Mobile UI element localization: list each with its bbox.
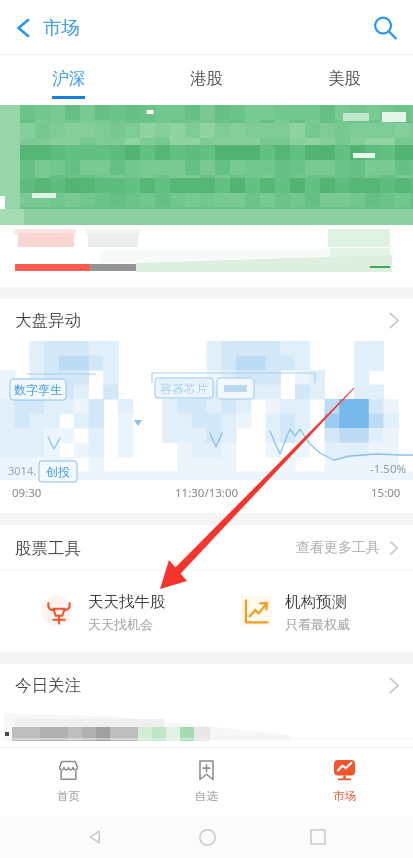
staticText: 09:30 — [12, 485, 42, 501]
staticText: 首页 — [57, 789, 80, 803]
button[interactable] — [0, 105, 413, 225]
staticText: 今日关注 — [15, 675, 81, 696]
button[interactable]: 天天找牛股 — [0, 571, 206, 652]
staticText: 15:00 — [371, 485, 401, 501]
button[interactable]: 数字孪生 — [10, 379, 66, 400]
staticText: 港股 — [190, 68, 223, 89]
button[interactable] — [0, 706, 413, 747]
button[interactable]: 容器芯片 — [155, 378, 213, 398]
button[interactable]: 查看更多工具 — [296, 525, 413, 571]
staticText: 3014. — [8, 463, 37, 478]
button[interactable]: 沪深 — [0, 55, 137, 105]
staticText: 11:30/13:00 — [175, 485, 239, 501]
staticText: 容器芯片 — [160, 381, 208, 396]
staticText: 天天找牛股 — [88, 592, 166, 612]
button[interactable]: Search — [357, 0, 413, 55]
other: More — [389, 677, 399, 694]
staticText: 天天找机会 — [88, 616, 153, 632]
staticText: 自选 — [195, 789, 218, 803]
button[interactable]: 创投 — [39, 461, 77, 482]
button[interactable]: 市场 — [0, 0, 96, 55]
button[interactable]: Back — [78, 820, 112, 854]
button[interactable]: 首页 — [0, 747, 137, 816]
staticText: -1.50% — [370, 461, 407, 477]
button[interactable]: Home — [190, 820, 224, 854]
button[interactable]: 今日关注 — [0, 664, 413, 706]
staticText: 大盘异动 — [15, 310, 81, 331]
staticText: 市场 — [43, 16, 80, 39]
staticText: 市场 — [333, 789, 356, 803]
staticText: 数字孪生 — [14, 382, 62, 397]
staticText: 创投 — [46, 464, 70, 479]
staticText: 只看最权威 — [285, 616, 350, 632]
staticText: 股票工具 — [15, 538, 81, 559]
button[interactable]: 自选 — [137, 747, 275, 816]
button[interactable] — [0, 225, 413, 287]
button[interactable]: 市场 — [275, 747, 413, 816]
button[interactable]: 港股 — [137, 55, 275, 105]
staticText: 机构预测 — [285, 592, 347, 612]
button[interactable]: 美股 — [275, 55, 413, 105]
button[interactable]: 机构预测 — [206, 571, 413, 652]
other: More — [389, 312, 399, 329]
button[interactable]: 大盘异动 — [0, 299, 413, 341]
staticText: 查看更多工具 — [296, 539, 380, 557]
button[interactable]: Recents — [301, 820, 335, 854]
staticText: 美股 — [328, 68, 361, 89]
staticText: 沪深 — [52, 68, 85, 89]
